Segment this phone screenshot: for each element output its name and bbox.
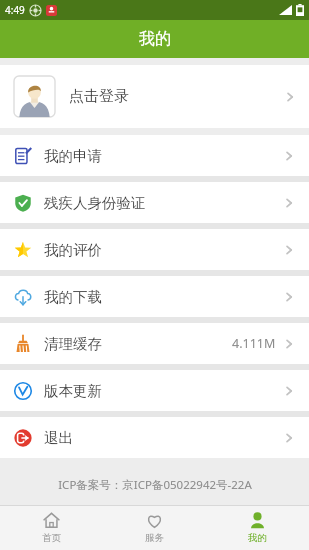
staticText: 首页 [42,532,61,544]
staticText: 我的 [139,29,171,49]
button[interactable]: 服务 [103,506,206,550]
staticText: 4:49 [5,3,25,17]
staticText: 我的下载 [44,288,102,306]
staticText: 服务 [145,532,164,544]
staticText: 4.111M [232,335,276,352]
staticText: 清理缓存 [44,335,102,353]
button[interactable]: 我的评价 [0,229,309,270]
button[interactable]: 清理缓存 [0,323,309,364]
button[interactable]: 残疾人身份验证 [0,182,309,223]
staticText: ICP备案号：京ICP备05022942号-22A [58,477,252,493]
staticText: 我的申请 [44,147,102,165]
button[interactable]: 我的 [206,506,309,550]
staticText: 我的 [248,532,267,544]
staticText: 我的评价 [44,241,102,259]
button[interactable]: 退出 [0,417,309,458]
staticText: 点击登录 [69,87,129,106]
staticText: 残疾人身份验证 [44,194,146,212]
staticText: 版本更新 [44,382,102,400]
button[interactable]: 我的申请 [0,135,309,176]
button[interactable]: 首页 [0,506,103,550]
button[interactable]: 我的下载 [0,276,309,317]
button[interactable]: 点击登录 [0,65,309,128]
staticText: 退出 [44,429,73,447]
button[interactable]: 版本更新 [0,370,309,411]
